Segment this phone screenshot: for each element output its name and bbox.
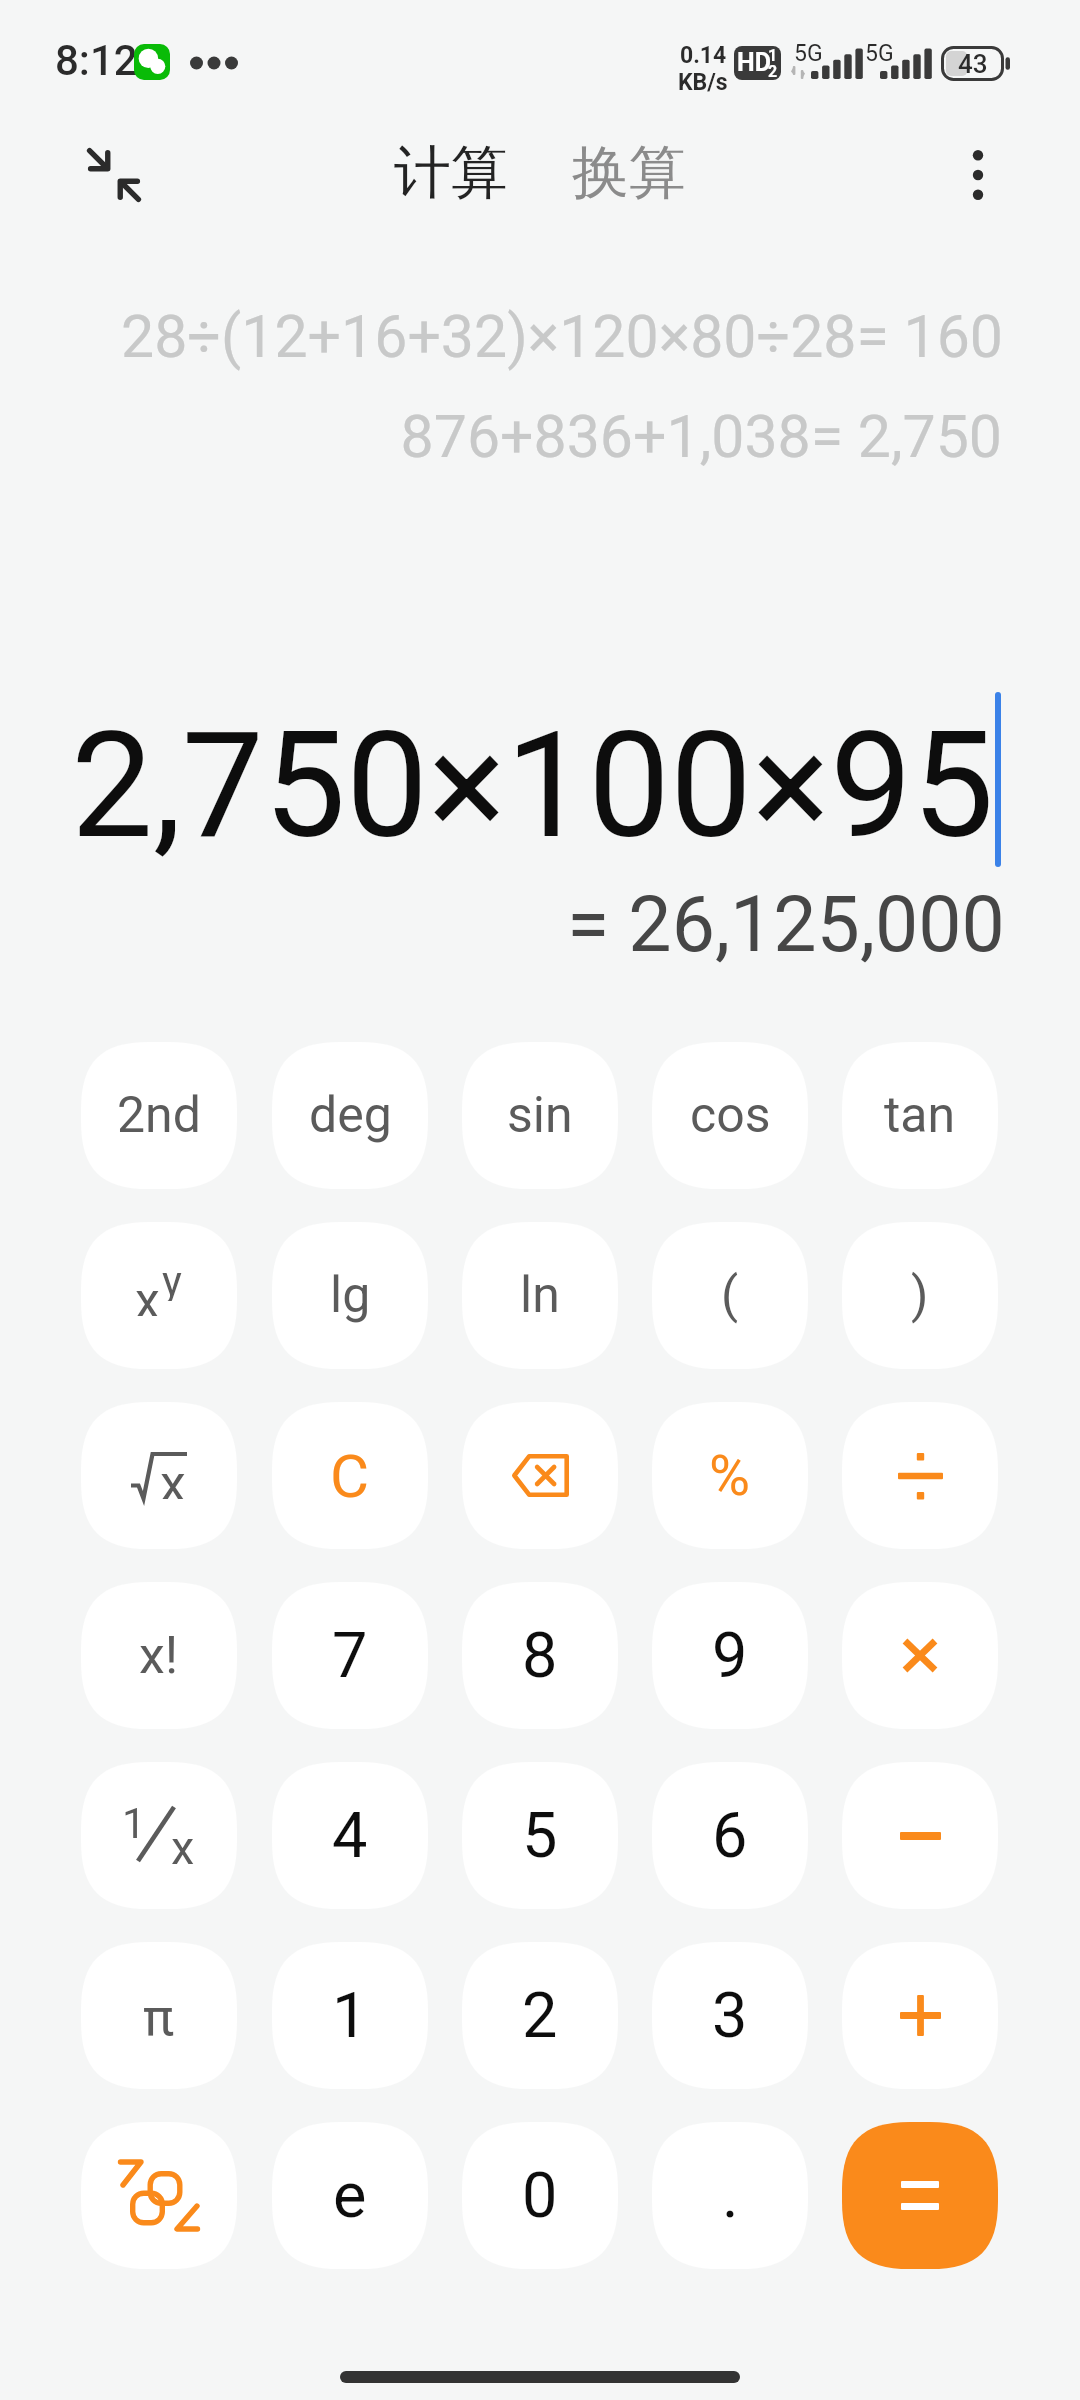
button[interactable]: 换算 [554, 125, 704, 221]
staticText: 8 [522, 1619, 558, 1693]
button[interactable]: 7 [272, 1582, 428, 1729]
button[interactable]: π [81, 1942, 237, 2089]
staticText: 4 [332, 1799, 368, 1873]
button[interactable]: 4 [272, 1762, 428, 1909]
staticText: 7 [332, 1619, 368, 1693]
button[interactable]: 6 [652, 1762, 808, 1909]
button[interactable]: ( [652, 1222, 808, 1369]
button[interactable]: . [652, 2122, 808, 2269]
button[interactable]: deg [272, 1042, 428, 1189]
staticText: tan [884, 1086, 956, 1145]
staticText: 43 [958, 49, 988, 79]
staticText: ) [911, 1266, 929, 1325]
staticText: KB/s [678, 69, 728, 96]
button[interactable]: 8 [462, 1582, 618, 1729]
button[interactable]: 0 [462, 2122, 618, 2269]
staticText: 换算 [572, 137, 686, 209]
button[interactable]: cos [652, 1042, 808, 1189]
button[interactable]: ) [842, 1222, 998, 1369]
staticText: 8:12 [55, 36, 138, 85]
button[interactable]: Plus [842, 1942, 998, 2089]
staticText: 5G [865, 40, 894, 67]
button[interactable]: 2nd [81, 1042, 237, 1189]
staticText: 2 [768, 62, 778, 80]
button[interactable]: x to the power of y [81, 1222, 237, 1369]
staticText: 2 [522, 1979, 558, 2053]
staticText: ( [721, 1266, 739, 1325]
staticText: 28÷(12+16+32)×120×80÷28= 160 [121, 302, 1003, 371]
button[interactable]: Equals [842, 2122, 998, 2269]
button[interactable]: 1 [272, 1942, 428, 2089]
staticText: y [162, 1257, 182, 1301]
staticText: = 26,125,000 [567, 880, 1005, 970]
staticText: sin [507, 1086, 573, 1145]
button[interactable]: % [652, 1402, 808, 1549]
staticText: HD [737, 48, 771, 77]
staticText: deg [309, 1086, 392, 1145]
staticText: 计算 [394, 137, 508, 209]
staticText: C [330, 1441, 370, 1511]
button[interactable]: Multiply [842, 1582, 998, 1729]
staticText: x [160, 1453, 186, 1499]
staticText: 0.14 [680, 42, 727, 69]
staticText: 9 [712, 1619, 748, 1693]
button[interactable]: One over x [81, 1762, 237, 1909]
staticText: x [171, 1820, 195, 1875]
button[interactable]: 计算 [376, 125, 526, 221]
staticText: e [333, 2159, 367, 2233]
button[interactable]: sin [462, 1042, 618, 1189]
staticText: 876+836+1,038= 2,750 [400, 402, 1002, 471]
button[interactable]: Minus [842, 1762, 998, 1909]
button[interactable]: More options [920, 117, 1036, 233]
button[interactable]: 3 [652, 1942, 808, 2089]
staticText: 2,750×100×95 [71, 701, 995, 872]
staticText: 5 [522, 1799, 558, 1873]
button[interactable]: Backspace [462, 1402, 618, 1549]
button[interactable]: 2 [462, 1942, 618, 2089]
staticText: lg [330, 1266, 371, 1325]
staticText: π [143, 1987, 175, 2048]
button[interactable]: lg [272, 1222, 428, 1369]
staticText: 1 [332, 1979, 368, 2053]
button[interactable]: tan [842, 1042, 998, 1189]
button[interactable]: e [272, 2122, 428, 2269]
button[interactable]: Square root [81, 1402, 237, 1549]
staticText: 6 [712, 1799, 748, 1873]
staticText: x! [139, 1625, 179, 1686]
staticText: 1 [768, 46, 778, 65]
button[interactable]: Exit full screen [56, 117, 172, 233]
staticText: % [709, 1443, 751, 1509]
staticText: cos [690, 1086, 771, 1145]
button[interactable]: Unit conversion [81, 2122, 237, 2269]
button[interactable]: ln [462, 1222, 618, 1369]
staticText: x [135, 1272, 160, 1316]
staticText: 1 [122, 1799, 146, 1848]
button[interactable]: C [272, 1402, 428, 1549]
button[interactable]: 9 [652, 1582, 808, 1729]
staticText: 0 [522, 2159, 558, 2233]
staticText: 5G [794, 40, 823, 67]
staticText: 3 [712, 1979, 748, 2053]
button[interactable]: x! [81, 1582, 237, 1729]
staticText: ln [520, 1266, 560, 1325]
staticText: . [722, 2159, 739, 2233]
button[interactable]: Divide [842, 1402, 998, 1549]
staticText: 2nd [117, 1086, 201, 1145]
button[interactable]: 5 [462, 1762, 618, 1909]
